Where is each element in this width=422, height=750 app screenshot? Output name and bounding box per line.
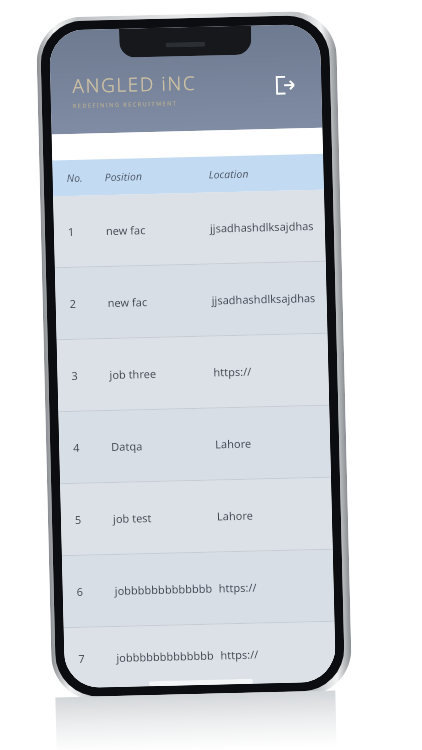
staticText: job test xyxy=(113,510,152,526)
staticText: REDEFINING RECRUITMENT xyxy=(73,99,178,109)
staticText: jobbbbbbbbbbbbbbbbbb xyxy=(116,647,216,665)
staticText: 2 xyxy=(69,296,77,311)
button[interactable]: 5 xyxy=(60,478,333,555)
staticText: 6 xyxy=(76,584,84,599)
button[interactable]: 1 xyxy=(53,190,326,267)
button[interactable]: 3 xyxy=(57,334,329,411)
button[interactable]: 7 xyxy=(64,622,336,688)
staticText: Position xyxy=(104,169,143,184)
button[interactable]: Log out xyxy=(265,65,304,104)
staticText: 1 xyxy=(68,224,75,239)
button[interactable]: 4 xyxy=(58,406,331,483)
staticText: No. xyxy=(66,171,84,185)
staticText: https://www.google.com xyxy=(220,645,335,662)
staticText: https://www.google.com xyxy=(213,362,328,379)
staticText: 3 xyxy=(71,368,79,383)
staticText: new fac xyxy=(107,294,148,310)
staticText: 5 xyxy=(75,512,82,527)
staticText: Location xyxy=(208,167,249,182)
staticText: ANGLED iNC xyxy=(72,70,197,99)
staticText: jobbbbbbbbbbbbbbbbbb xyxy=(114,581,215,598)
staticText: new fac xyxy=(106,222,146,238)
staticText: https://www.google.com xyxy=(218,578,334,595)
staticText: jjsadhashdlksajdhas xyxy=(211,290,316,307)
staticText: Lahore xyxy=(215,436,251,451)
staticText: Lahore xyxy=(217,508,253,523)
staticText: Datqa xyxy=(111,438,143,454)
staticText: jjsadhashdlksajdhas xyxy=(210,218,314,235)
staticText: 4 xyxy=(73,440,80,455)
button[interactable]: 2 xyxy=(55,262,327,339)
staticText: job three xyxy=(109,366,157,382)
button[interactable]: 6 xyxy=(62,550,335,627)
staticText: 7 xyxy=(78,651,86,666)
